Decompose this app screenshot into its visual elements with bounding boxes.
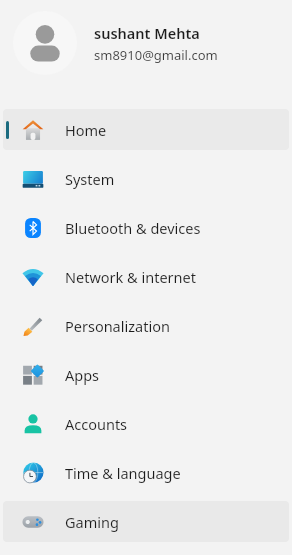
- button[interactable]: Apps: [3, 354, 289, 395]
- button[interactable]: Time & language: [3, 452, 289, 493]
- staticText: sm8910@gmail.com: [94, 46, 218, 64]
- button[interactable]: Network & internet: [3, 256, 289, 297]
- button[interactable]: Personalization: [3, 305, 289, 346]
- button[interactable]: System: [3, 158, 289, 199]
- button[interactable]: sushant Mehta: [0, 0, 292, 86]
- button[interactable]: Home: [3, 109, 289, 150]
- staticText: Time & language: [65, 463, 181, 483]
- staticText: Gaming: [65, 512, 119, 532]
- staticText: Home: [65, 120, 107, 140]
- button[interactable]: Bluetooth & devices: [3, 207, 289, 248]
- staticText: sushant Mehta: [94, 23, 200, 43]
- staticText: System: [65, 169, 115, 189]
- staticText: Network & internet: [65, 267, 196, 287]
- staticText: Personalization: [65, 316, 170, 336]
- staticText: Bluetooth & devices: [65, 218, 201, 238]
- button[interactable]: Gaming: [3, 501, 289, 542]
- staticText: Accounts: [65, 414, 128, 434]
- staticText: Apps: [65, 365, 100, 385]
- button[interactable]: Accounts: [3, 403, 289, 444]
